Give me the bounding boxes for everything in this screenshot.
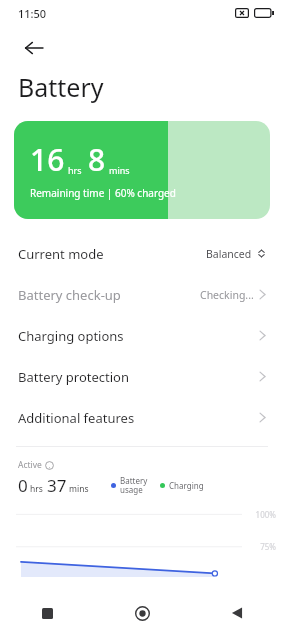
staticText: hrs bbox=[68, 164, 82, 176]
button[interactable]: Info bbox=[45, 461, 54, 470]
staticText: 11:50 bbox=[18, 6, 47, 21]
staticText: Battery usage bbox=[120, 475, 148, 496]
staticText: hrs bbox=[30, 483, 43, 495]
staticText: Active bbox=[18, 459, 42, 471]
staticText: Remaining time | 60% charged bbox=[30, 186, 176, 200]
staticText: Checking... bbox=[200, 288, 254, 302]
staticText: mins bbox=[69, 483, 89, 495]
staticText: Battery protection bbox=[18, 368, 130, 386]
button[interactable]: Back bbox=[12, 26, 56, 70]
button[interactable]: Back bbox=[215, 596, 259, 630]
staticText: Balanced bbox=[206, 247, 252, 261]
button[interactable]: Home bbox=[120, 596, 164, 630]
staticText: 75% bbox=[260, 541, 276, 552]
staticText: 100% bbox=[255, 509, 276, 520]
button[interactable]: Battery protection bbox=[0, 356, 284, 397]
staticText: 0 bbox=[18, 474, 28, 497]
button[interactable]: Recents bbox=[25, 596, 69, 630]
staticText: 16 bbox=[30, 139, 65, 180]
button[interactable]: Current mode bbox=[0, 233, 284, 274]
staticText: Current mode bbox=[18, 245, 104, 263]
button[interactable]: Charging options bbox=[0, 315, 284, 356]
staticText: Battery bbox=[18, 70, 104, 104]
staticText: Battery check-up bbox=[18, 286, 121, 304]
staticText: Additional features bbox=[18, 409, 135, 427]
staticText: mins bbox=[109, 164, 130, 176]
button[interactable]: Additional features bbox=[0, 397, 284, 438]
staticText: Charging options bbox=[18, 327, 124, 345]
button[interactable]: 16 bbox=[14, 121, 270, 219]
staticText: 8 bbox=[88, 139, 106, 180]
staticText: 37 bbox=[47, 474, 67, 497]
staticText: Charging bbox=[169, 480, 204, 491]
button[interactable]: Battery check-up bbox=[0, 274, 284, 315]
